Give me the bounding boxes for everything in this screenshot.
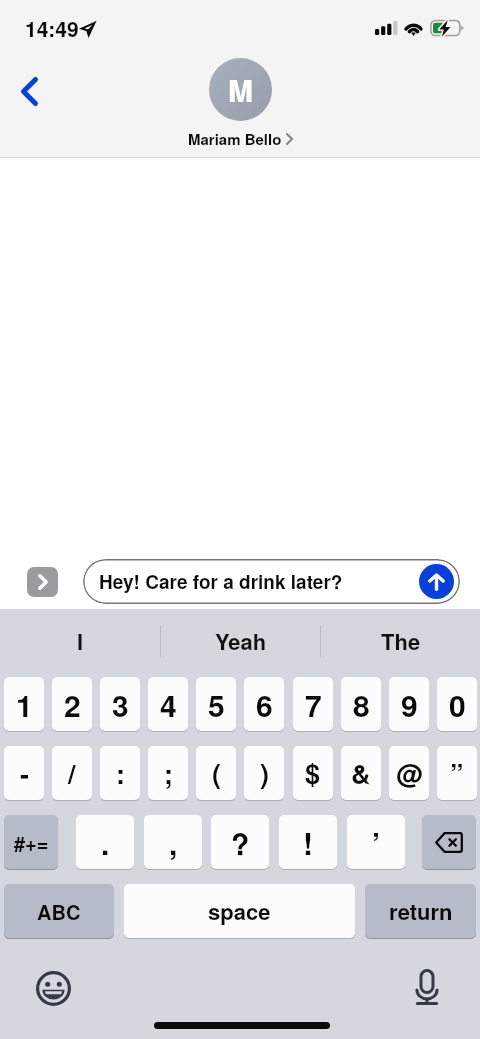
staticText: / [68,754,76,793]
staticText: 2 [64,683,81,726]
button[interactable]: ? [211,815,269,869]
staticText: M [228,68,253,111]
staticText: 5 [208,683,225,726]
button[interactable]: Show more apps [27,567,58,597]
button[interactable]: ! [279,815,337,869]
staticText: ” [450,754,464,793]
staticText: @ [396,754,423,793]
button[interactable]: #+= [4,815,58,869]
button[interactable]: ) [244,746,284,800]
staticText: space [208,895,271,927]
button[interactable]: 7 [293,677,333,731]
staticText: 9 [401,683,418,726]
button[interactable]: Emoji keyboard [29,964,77,1012]
button[interactable]: 0 [437,677,477,731]
button[interactable]: 9 [389,677,429,731]
button[interactable]: space [124,884,355,938]
staticText: 4 [160,683,177,726]
button[interactable]: , [144,815,202,869]
staticText: Mariam Bello [188,128,282,149]
button[interactable]: 6 [244,677,284,731]
button[interactable]: @ [389,746,429,800]
staticText: Hey! Care for a drink later? [99,568,343,595]
staticText: I [77,625,84,657]
staticText: return [389,895,453,927]
button[interactable]: Yeah [161,609,320,673]
button[interactable]: Back [6,68,52,114]
button[interactable]: Delete [422,815,476,869]
button[interactable]: 5 [196,677,236,731]
button[interactable]: 4 [148,677,188,731]
staticText: The [381,625,421,657]
staticText: #+= [14,828,49,857]
button[interactable]: $ [293,746,333,800]
button[interactable]: Hey! Care for a drink later? [83,559,460,604]
button[interactable]: The [321,609,480,673]
staticText: ! [303,821,313,864]
button[interactable]: ” [437,746,477,800]
button[interactable]: ’ [347,815,405,869]
staticText: 14:49 [25,13,79,43]
button[interactable]: Send [419,564,454,599]
staticText: ) [260,754,269,793]
button[interactable]: ABC [4,884,114,938]
button[interactable]: . [76,815,134,869]
button[interactable]: - [4,746,44,800]
staticText: 8 [353,683,370,726]
staticText: ? [231,821,250,864]
button[interactable]: / [52,746,92,800]
staticText: ABC [37,897,81,926]
staticText: 0 [449,683,466,726]
staticText: 1 [16,683,33,726]
button[interactable]: ( [196,746,236,800]
button[interactable]: 3 [100,677,140,731]
button[interactable]: M [188,55,293,149]
staticText: - [20,754,29,793]
button[interactable]: : [100,746,140,800]
staticText: ’ [372,821,381,864]
staticText: , [169,821,178,864]
staticText: ( [212,754,221,793]
button[interactable]: 2 [52,677,92,731]
staticText: . [101,821,110,864]
button[interactable]: 8 [341,677,381,731]
staticText: 7 [305,683,322,726]
button[interactable]: I [0,609,160,673]
staticText: & [351,754,371,793]
button[interactable]: return [365,884,476,938]
staticText: 3 [112,683,129,726]
staticText: Yeah [215,625,267,657]
button[interactable]: & [341,746,381,800]
button[interactable]: ; [148,746,188,800]
staticText: ; [164,754,173,793]
button[interactable]: Dictation [403,963,451,1011]
button[interactable]: 1 [4,677,44,731]
staticText: 6 [256,683,273,726]
staticText: : [116,754,125,793]
staticText: $ [305,754,321,793]
